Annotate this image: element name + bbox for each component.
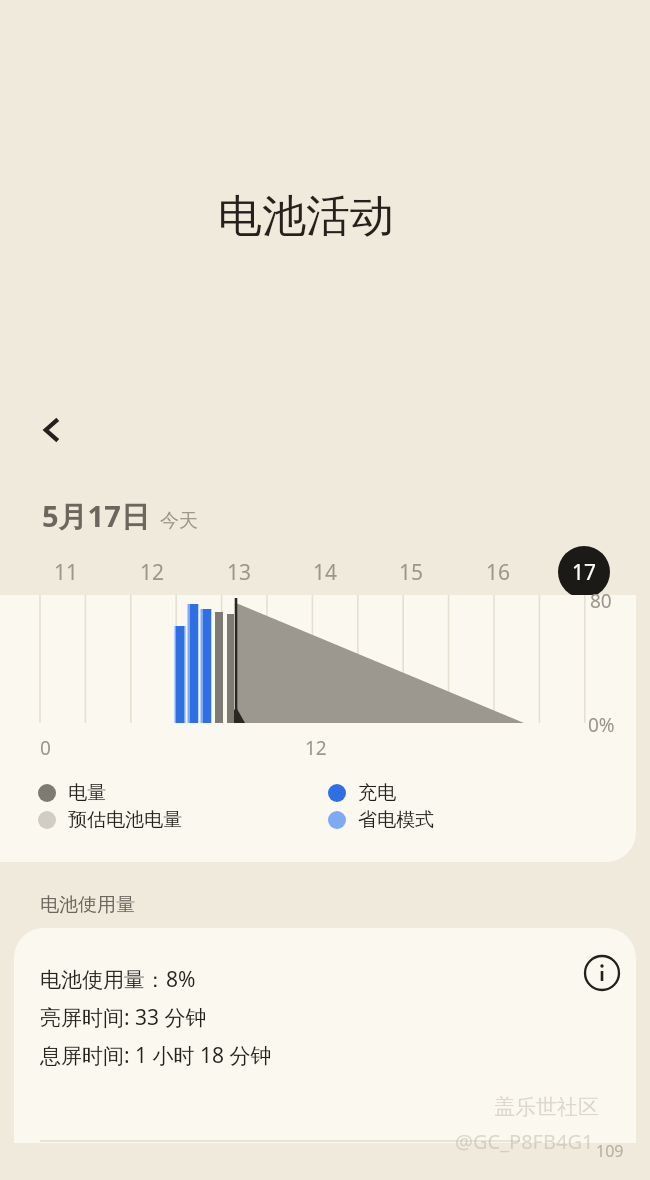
button[interactable] [14,928,636,1143]
staticText: 80 [590,588,612,614]
staticText: 12 [305,735,327,761]
button[interactable]: Back [28,406,76,454]
staticText: 省电模式 [358,808,434,832]
button[interactable]: 12 [126,546,178,598]
button[interactable]: 17 [558,546,610,598]
staticText: 电池活动 [218,189,394,244]
staticText: 盖乐世社区 [494,1094,599,1120]
button[interactable]: 13 [213,546,265,598]
staticText: 电量 [68,781,106,805]
staticText: 17 [572,558,597,587]
staticText: 11 [54,558,79,587]
staticText: 亮屏时间: 33 分钟 [40,1003,207,1032]
button[interactable]: 16 [472,546,524,598]
staticText: 充电 [358,781,396,805]
staticText: @GC_P8FB4G1 [455,1128,594,1155]
staticText: 15 [399,558,424,587]
staticText: 预估电池电量 [68,808,182,832]
staticText: 0 [40,735,51,761]
button[interactable]: Info [580,951,624,995]
staticText: 电池使用量 [40,893,135,917]
staticText: 0% [588,712,615,738]
staticText: 16 [486,558,511,587]
button[interactable]: 14 [299,546,351,598]
staticText: 今天 [160,509,198,533]
staticText: 5月17日 [42,496,150,536]
button[interactable]: 11 [40,546,92,598]
staticText: 12 [140,558,165,587]
staticText: 109 [596,1140,624,1162]
staticText: 13 [227,558,252,587]
staticText: 电池使用量：8% [40,965,196,994]
staticText: 14 [313,558,338,587]
button[interactable]: 15 [385,546,437,598]
staticText: 息屏时间: 1 小时 18 分钟 [40,1041,272,1070]
